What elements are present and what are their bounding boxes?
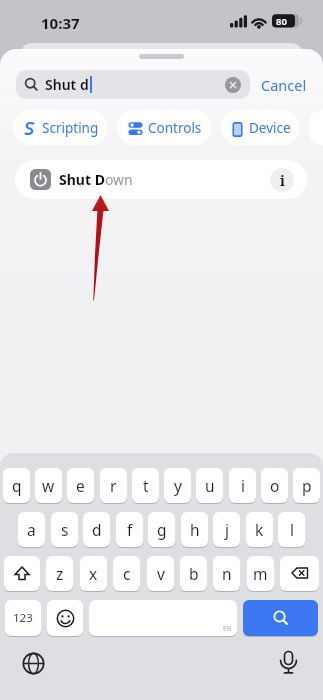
button[interactable]: o xyxy=(261,468,288,503)
button[interactable]: Device xyxy=(221,110,300,145)
staticText: 80 xyxy=(276,15,287,28)
staticText: i xyxy=(280,171,285,190)
button[interactable]: z xyxy=(46,556,73,591)
button[interactable]: m xyxy=(247,556,274,591)
button[interactable]: EN xyxy=(89,600,237,636)
staticText: q xyxy=(12,475,22,496)
staticText: p xyxy=(302,475,312,496)
staticText: e xyxy=(76,475,85,496)
button[interactable]: s xyxy=(51,512,78,547)
button[interactable]: a xyxy=(18,512,45,547)
button[interactable]: i xyxy=(229,468,256,503)
button[interactable] xyxy=(271,646,306,681)
staticText: i xyxy=(241,475,245,496)
button[interactable]: p xyxy=(293,468,320,503)
button[interactable]: h xyxy=(181,512,208,547)
staticText: s xyxy=(61,519,69,540)
button[interactable]: d xyxy=(83,512,110,547)
staticText: u xyxy=(205,475,215,496)
button[interactable]: i xyxy=(270,168,294,192)
button[interactable]: n xyxy=(213,556,240,591)
button[interactable] xyxy=(243,600,318,636)
staticText: Cancel xyxy=(261,75,307,95)
staticText: z xyxy=(56,563,64,584)
button[interactable]: c xyxy=(113,556,140,591)
button[interactable] xyxy=(4,556,40,591)
staticText: f xyxy=(127,519,133,540)
staticText: b xyxy=(189,563,199,584)
button[interactable]: Cancel xyxy=(258,70,310,99)
staticText: EN xyxy=(223,624,232,633)
button[interactable]: v xyxy=(147,556,174,591)
button[interactable]: 123 xyxy=(5,600,41,636)
staticText: y xyxy=(174,475,182,496)
button[interactable]: e xyxy=(67,468,94,503)
button[interactable]: u xyxy=(196,468,223,503)
staticText: Shut Down xyxy=(59,170,133,189)
button[interactable]: Scripting xyxy=(13,110,108,145)
button[interactable]: g xyxy=(148,512,175,547)
staticText: k xyxy=(255,519,264,540)
staticText: r xyxy=(110,475,117,496)
button[interactable] xyxy=(225,77,241,93)
button[interactable]: j xyxy=(213,512,240,547)
staticText: Shut d xyxy=(45,75,89,94)
staticText: 10:37 xyxy=(41,13,80,33)
button[interactable]: t xyxy=(132,468,159,503)
staticText: m xyxy=(253,563,268,584)
staticText: w xyxy=(42,475,55,496)
staticText: l xyxy=(290,519,294,540)
button[interactable]: w xyxy=(35,468,62,503)
staticText: c xyxy=(123,563,131,584)
staticText: Scripting xyxy=(42,119,99,137)
button[interactable] xyxy=(47,600,83,636)
button[interactable]: q xyxy=(3,468,30,503)
button[interactable]: k xyxy=(246,512,273,547)
button[interactable] xyxy=(280,556,319,591)
staticText: j xyxy=(225,519,229,540)
staticText: t xyxy=(143,475,149,496)
staticText: Controls xyxy=(148,119,202,137)
button[interactable]: r xyxy=(100,468,127,503)
staticText: 123 xyxy=(13,610,33,626)
button[interactable]: b xyxy=(180,556,207,591)
staticText: v xyxy=(157,563,165,584)
button[interactable] xyxy=(16,646,51,681)
button[interactable]: x xyxy=(80,556,107,591)
staticText: Device xyxy=(249,119,291,137)
staticText: g xyxy=(157,519,167,540)
staticText: a xyxy=(27,519,36,540)
button[interactable]: f xyxy=(116,512,143,547)
staticText: n xyxy=(222,563,232,584)
staticText: d xyxy=(92,519,102,540)
button[interactable]: Shut d xyxy=(16,70,250,99)
button[interactable]: Shut Down xyxy=(15,160,307,199)
staticText: x xyxy=(89,563,98,584)
button[interactable]: Controls xyxy=(117,110,212,145)
staticText: o xyxy=(270,475,280,496)
button[interactable]: y xyxy=(164,468,191,503)
button[interactable]: l xyxy=(278,512,305,547)
staticText: h xyxy=(190,519,200,540)
